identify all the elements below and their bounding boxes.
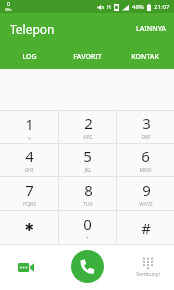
button[interactable]: Video call [12,256,40,279]
staticText: 9 [142,180,151,200]
staticText: Sembunyi [136,271,160,278]
button[interactable]: 1 [0,111,58,143]
button[interactable]: LAINNYA [128,18,174,40]
staticText: KONTAK [131,52,159,62]
button[interactable]: 6 [117,144,174,176]
staticText: PQRS [23,201,36,208]
staticText: 2 [84,113,93,133]
button[interactable]: # [117,211,174,244]
button[interactable]: 8 [59,177,116,210]
button[interactable]: Sembunyi [132,255,164,280]
staticText: WXYZ [139,201,153,208]
button[interactable]: ✱ [0,211,58,244]
staticText: KB/s [5,8,12,12]
staticText: Telepon [10,21,55,37]
staticText: DEF [141,134,151,141]
staticText: 0 [83,214,92,234]
staticText: ∞ [27,135,32,141]
button[interactable]: 3 [117,111,174,143]
staticText: # [141,218,151,238]
staticText: 48% [132,3,144,11]
staticText: JKL [84,167,92,174]
staticText: FAVORIT [73,52,102,62]
staticText: ✱ [24,221,34,234]
staticText: 4 [25,146,34,166]
staticText: 1 [25,114,34,134]
staticText: 6 [141,146,150,166]
staticText: LAINNYA [136,24,166,34]
button[interactable]: 0 [59,211,116,244]
button[interactable]: LOG [0,44,58,69]
staticText: 21:07 [154,3,170,11]
button[interactable]: 4 [0,144,58,176]
staticText: 8 [84,180,93,200]
button[interactable]: 9 [117,177,174,210]
staticText: H [107,4,111,11]
button[interactable]: 7 [0,177,58,210]
staticText: ABC [83,134,93,141]
staticText: 3 [142,113,151,133]
button[interactable]: Call [71,250,104,283]
button[interactable]: KONTAK [116,44,174,69]
staticText: GHI [24,167,34,174]
button[interactable]: 5 [59,144,116,176]
staticText: LOG [22,52,37,62]
staticText: 7 [25,180,34,200]
staticText: MNO [139,167,152,174]
staticText: 5 [83,146,92,166]
button[interactable]: FAVORIT [58,44,116,69]
button[interactable]: 2 [59,111,116,143]
staticText: TUV [83,201,93,208]
staticText: + [86,235,89,242]
staticText: 0 [7,1,10,8]
